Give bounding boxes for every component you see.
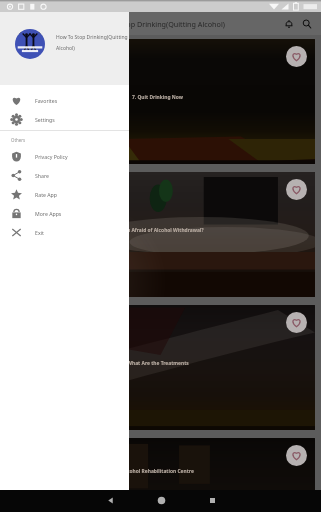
button[interactable]: Recent apps: [200, 489, 224, 511]
button[interactable]: More Apps: [0, 204, 129, 223]
button[interactable]: Are You Afraid of Alcohol Withdrawal?: [6, 172, 315, 297]
button[interactable]: Exit: [0, 223, 129, 242]
button[interactable]: Rate App: [0, 185, 129, 204]
button[interactable]: Favorite: [286, 312, 307, 333]
staticText: Are You Afraid of Alcohol Withdrawal?: [111, 227, 204, 234]
button[interactable]: Privacy Policy: [0, 147, 129, 166]
button[interactable]: Favorite: [286, 46, 307, 67]
button[interactable]: Favorite: [286, 179, 307, 200]
staticText: Rate App: [35, 191, 57, 198]
staticText: Privacy Policy: [35, 153, 68, 160]
button[interactable]: Home: [149, 489, 173, 511]
button[interactable]: 7. Quit Drinking Now: [6, 39, 315, 164]
staticText: Settings: [35, 116, 55, 123]
staticText: Favorites: [35, 97, 58, 104]
staticText: What Are the Treatments: [127, 360, 189, 367]
button[interactable]: What Are the Treatments: [6, 305, 315, 430]
button[interactable]: Settings: [0, 110, 129, 129]
staticText: 7. Quit Drinking Now: [132, 94, 183, 101]
button[interactable]: Favorite: [286, 445, 307, 466]
staticText: Alcohol Rehabilitation Centre: [122, 468, 194, 475]
button[interactable]: Search: [299, 16, 315, 32]
button[interactable]: Favorites: [0, 91, 129, 110]
staticText: Others: [11, 137, 26, 143]
staticText: Exit: [35, 229, 44, 236]
staticText: How To Stop Drinking(Quitting Alcohol): [56, 34, 130, 52]
staticText: Share: [35, 172, 49, 179]
button[interactable]: Alcohol Rehabilitation Centre: [6, 438, 315, 512]
staticText: More Apps: [35, 210, 62, 217]
button[interactable]: Share: [0, 166, 129, 185]
staticText: How To Stop Drinking(Quitting Alcohol): [93, 19, 225, 29]
button[interactable]: Back: [98, 489, 122, 511]
button[interactable]: Notifications: [281, 16, 297, 32]
